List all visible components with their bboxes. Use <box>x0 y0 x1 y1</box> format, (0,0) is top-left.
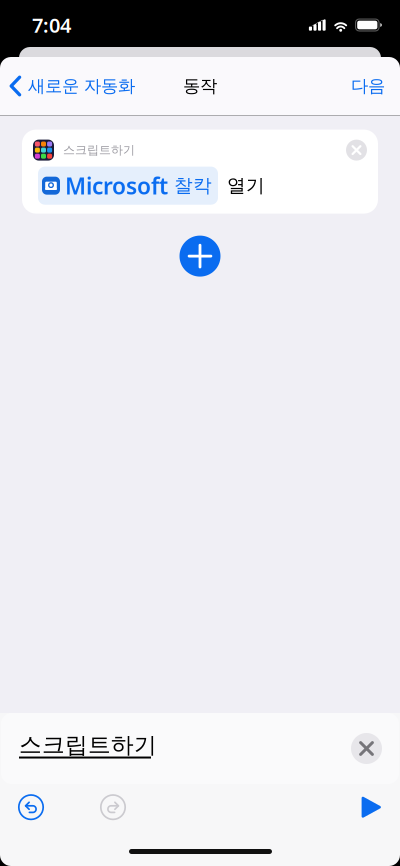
button[interactable]: Run <box>334 784 400 830</box>
staticText: 동작 <box>183 75 217 97</box>
button[interactable]: Redo <box>72 784 154 830</box>
button[interactable]: Undo <box>0 784 72 830</box>
staticText: 스크립트하기 <box>63 143 135 157</box>
button[interactable]: 다음 <box>333 62 400 110</box>
button[interactable]: Remove action <box>346 140 367 161</box>
staticText: 찰칵 <box>174 174 212 197</box>
staticText: 7:04 <box>32 12 71 38</box>
staticText: 새로운 자동화 <box>28 75 135 97</box>
staticText: 다음 <box>351 75 385 97</box>
staticText: 스크립트하기 <box>19 731 157 759</box>
button[interactable]: Add action <box>165 214 234 291</box>
staticText: Microsoft <box>65 171 168 201</box>
staticText: 열기 <box>227 174 265 197</box>
button[interactable]: Clear text <box>351 733 399 764</box>
button[interactable]: 새로운 자동화 <box>0 64 145 108</box>
